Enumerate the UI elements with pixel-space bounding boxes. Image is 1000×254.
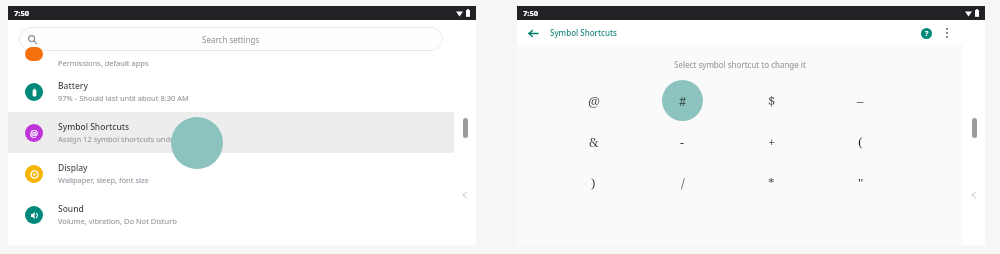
staticText: @	[30, 127, 39, 139]
staticText: 7:50	[14, 8, 29, 18]
staticText: Display	[58, 162, 88, 174]
staticText: Symbol Shortcuts	[58, 121, 130, 133]
staticText: ?	[925, 29, 929, 39]
button[interactable]: +	[727, 121, 816, 162]
button[interactable]: @	[549, 80, 638, 121]
staticText: /	[681, 174, 685, 192]
staticText: $	[768, 92, 776, 110]
button[interactable]: Display	[8, 153, 454, 194]
staticText: Volume, vibration, Do Not Disturb	[58, 216, 177, 226]
staticText: Wallpaper, sleep, font size	[58, 175, 149, 185]
staticText: Battery	[58, 80, 88, 92]
button[interactable]: /	[638, 162, 727, 203]
staticText: -	[680, 133, 685, 151]
staticText: 97% - Should last until about 8:30 AM	[58, 93, 189, 103]
button[interactable]: Sound	[8, 194, 454, 235]
staticText: @	[588, 92, 600, 110]
button[interactable]: Collapse panel	[967, 188, 981, 202]
staticText: Permissions, default apps	[58, 58, 149, 68]
button[interactable]: &	[549, 121, 638, 162]
button[interactable]: *	[727, 162, 816, 203]
button[interactable]: (	[816, 121, 905, 162]
button[interactable]: @	[8, 112, 454, 153]
staticText: Sound	[58, 203, 84, 215]
staticText: +	[768, 133, 776, 151]
staticText: Assign 12 symbol shortcuts under SYM-key	[58, 134, 209, 144]
button[interactable]: Back	[525, 25, 541, 41]
button[interactable]: "	[816, 162, 905, 203]
button[interactable]: Search settings	[19, 27, 443, 51]
staticText: Search settings	[202, 34, 260, 45]
button[interactable]: Help	[918, 25, 934, 41]
staticText: Select symbol shortcut to change it	[517, 59, 963, 70]
button[interactable]: Battery	[8, 71, 454, 112]
staticText: (	[858, 133, 863, 151]
staticText: –	[857, 92, 864, 110]
staticText: #	[679, 92, 687, 110]
button[interactable]: More options	[939, 25, 955, 41]
button[interactable]: –	[816, 80, 905, 121]
button[interactable]: )	[549, 162, 638, 203]
button[interactable]: #	[638, 80, 727, 121]
staticText: "	[858, 174, 864, 192]
staticText: *	[768, 174, 775, 192]
staticText: &	[589, 133, 599, 151]
button[interactable]: Collapse panel	[458, 188, 472, 202]
button[interactable]: $	[727, 80, 816, 121]
staticText: )	[591, 174, 596, 192]
button[interactable]: -	[638, 121, 727, 162]
staticText: Symbol Shortcuts	[550, 27, 617, 38]
staticText: 7:50	[523, 8, 538, 18]
